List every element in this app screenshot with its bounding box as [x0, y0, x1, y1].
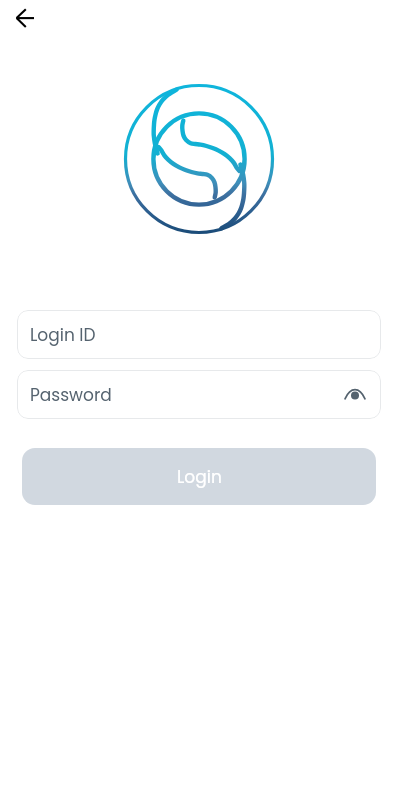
button[interactable]: Password [17, 370, 381, 419]
button[interactable]: Show password [341, 381, 369, 409]
button[interactable]: Back [7, 1, 43, 37]
staticText: Login [177, 465, 222, 489]
button[interactable]: Login ID [17, 310, 381, 359]
button[interactable]: Login [22, 448, 376, 505]
staticText: Password [30, 383, 112, 407]
staticText: Login ID [30, 323, 96, 347]
